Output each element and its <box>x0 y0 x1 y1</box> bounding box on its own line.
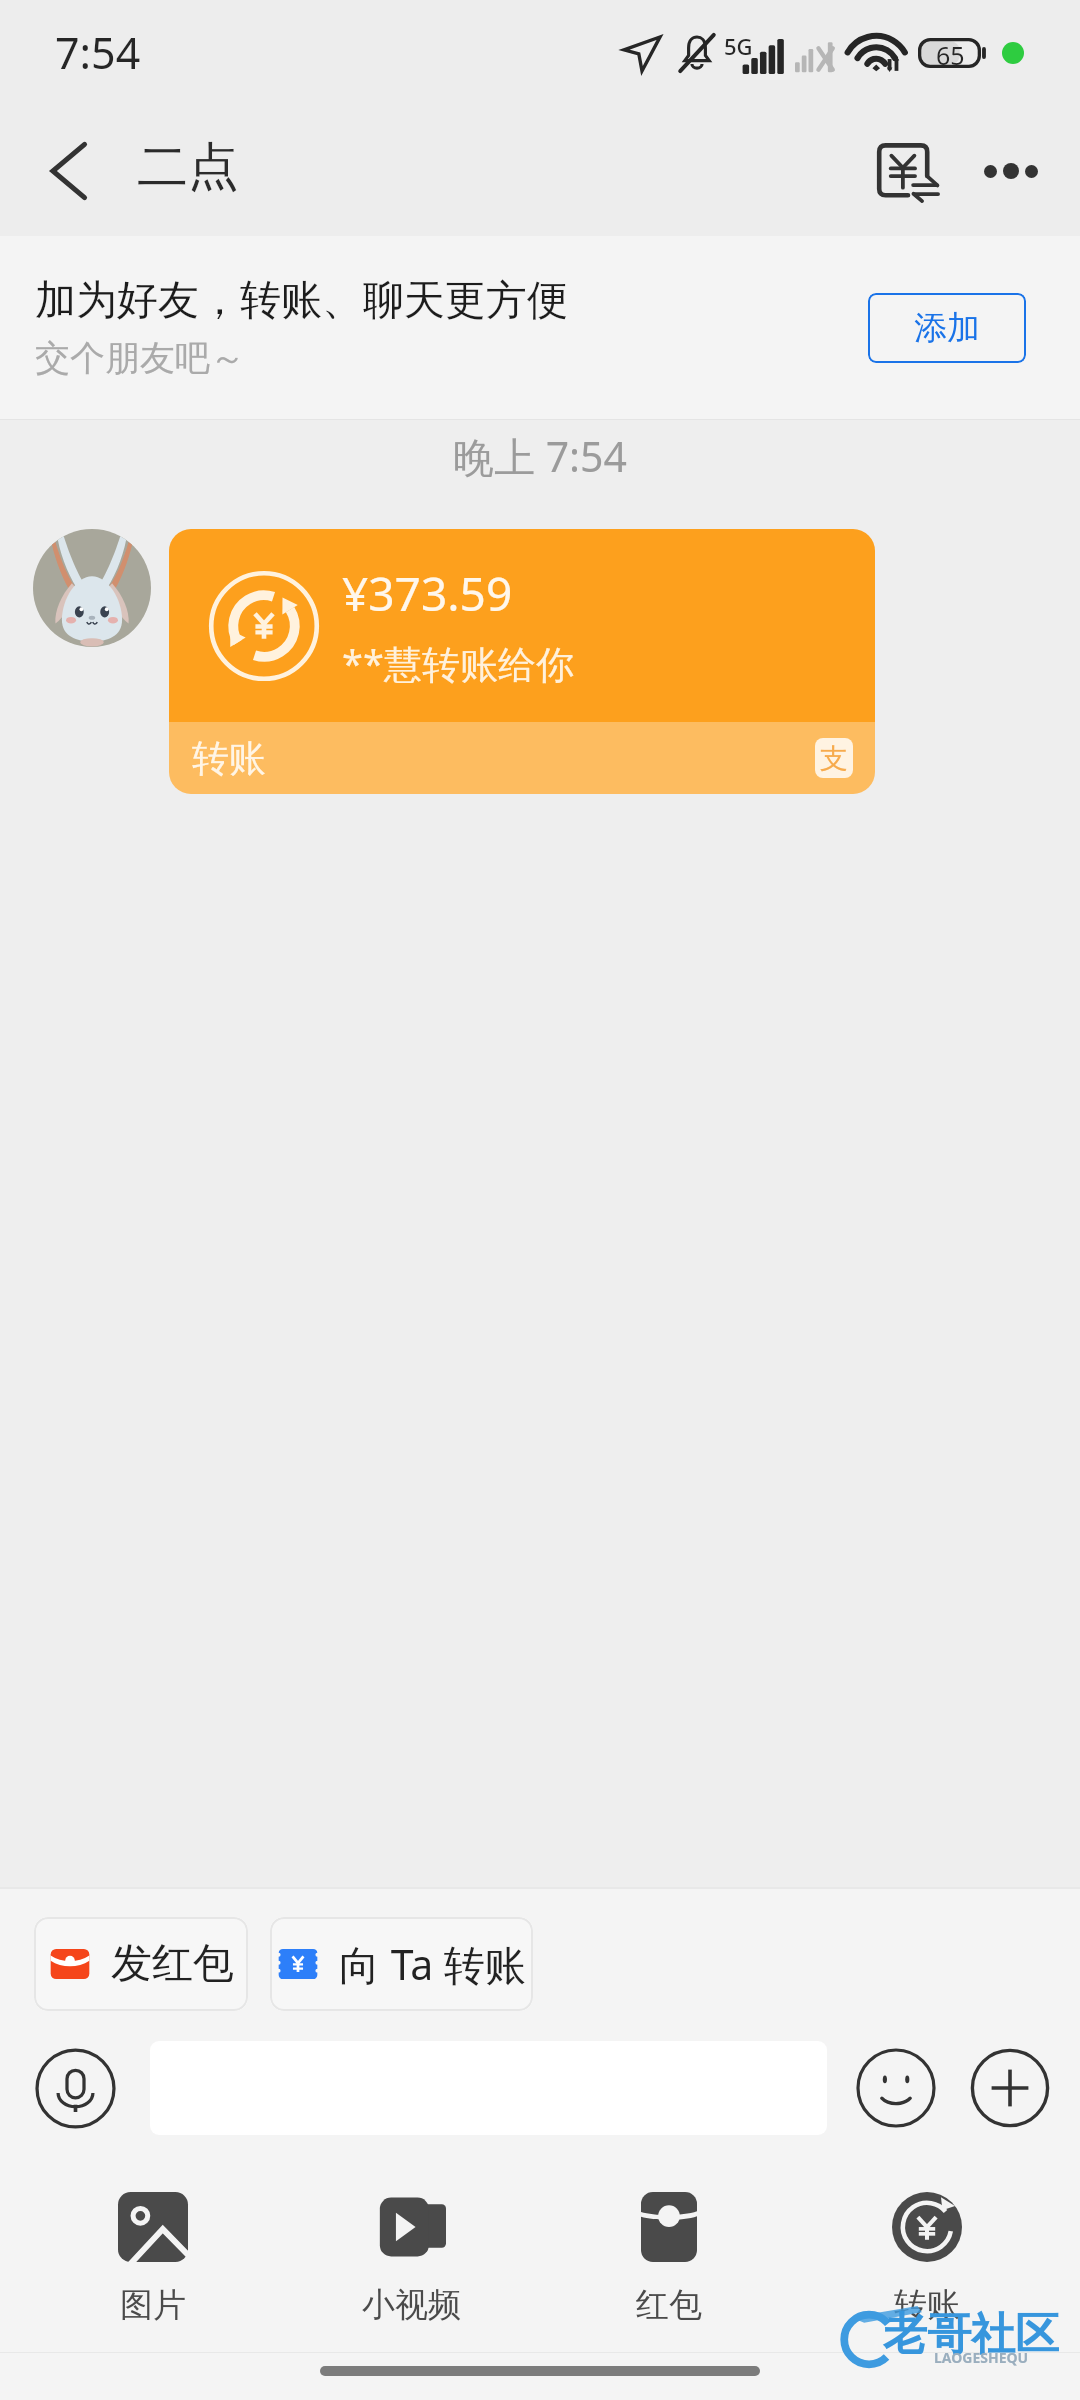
staticText: 小视频 <box>362 2284 461 2326</box>
staticText: ¥373.59 <box>342 562 513 625</box>
staticText: 向 Ta 转账 <box>339 1936 526 1992</box>
staticText: 添加 <box>914 307 980 349</box>
staticText: LAOGESHEQU <box>934 2348 1029 2367</box>
staticText: 图片 <box>120 2284 186 2326</box>
button[interactable]: 小视频 <box>306 2192 516 2326</box>
button[interactable]: 添加 <box>868 293 1026 363</box>
staticText: 交个朋友吧～ <box>35 336 245 380</box>
staticText: 晚上 7:54 <box>0 428 1080 484</box>
button[interactable]: ¥373.59 <box>169 529 875 794</box>
staticText: 5G <box>724 31 753 61</box>
staticText: 二点 <box>137 135 239 199</box>
button[interactable]: Back <box>0 105 136 236</box>
button[interactable]: 转账 <box>822 2192 1032 2326</box>
staticText: 转账 <box>894 2284 960 2326</box>
button[interactable]: More attachments <box>970 2048 1050 2128</box>
button[interactable]: Transfer money <box>853 105 963 236</box>
staticText: **慧转账给你 <box>342 637 574 689</box>
button[interactable]: 向 Ta 转账 <box>270 1917 533 2011</box>
button[interactable]: 红包 <box>564 2192 774 2326</box>
button[interactable]: More options <box>963 105 1059 236</box>
button[interactable]: 发红包 <box>34 1917 248 2011</box>
staticText: 转账 <box>192 735 266 782</box>
button[interactable]: 图片 <box>48 2192 258 2326</box>
staticText: 7:54 <box>55 23 141 82</box>
staticText: 红包 <box>636 2284 702 2326</box>
button[interactable]: Emoji <box>856 2048 936 2128</box>
staticText: 发红包 <box>111 1938 234 1990</box>
staticText: 加为好友，转账、聊天更方便 <box>35 275 568 327</box>
staticText: 支 <box>820 741 848 776</box>
button[interactable]: Voice message <box>35 2048 116 2129</box>
staticText: 65 <box>936 38 965 68</box>
staticText: 老哥社区 <box>883 2307 1059 2362</box>
button[interactable]: Avatar <box>33 529 151 647</box>
